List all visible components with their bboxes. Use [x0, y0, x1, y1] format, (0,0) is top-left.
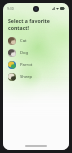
staticText: Sheep	[20, 74, 33, 80]
button[interactable]: Cat	[3, 35, 69, 47]
button[interactable]: Dog	[3, 47, 69, 59]
staticText: Parrot	[20, 62, 33, 68]
staticText: Dog	[20, 50, 29, 56]
staticText: Select a favorite contact!	[8, 17, 65, 31]
other: Home gesture bar	[25, 145, 47, 147]
staticText: Cat	[20, 38, 27, 44]
staticText: 9:30	[7, 6, 14, 11]
button[interactable]: Parrot	[3, 59, 69, 71]
button[interactable]: Sheep	[3, 71, 69, 83]
